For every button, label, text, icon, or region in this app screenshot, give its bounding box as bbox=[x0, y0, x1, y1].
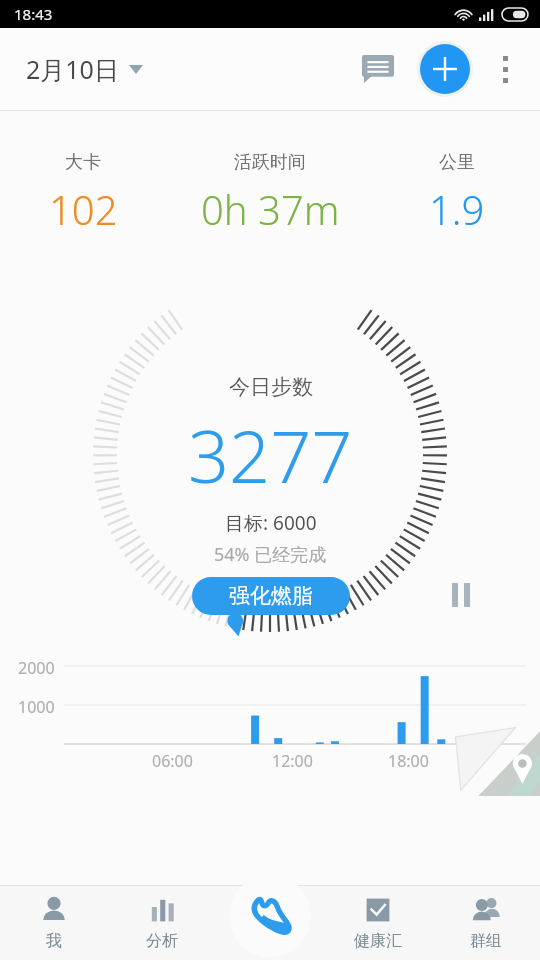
button[interactable]: 我 bbox=[0, 885, 108, 960]
staticText: 目标: 6000 bbox=[225, 510, 317, 536]
staticText: 大卡 bbox=[65, 151, 101, 174]
staticText: 18:43 bbox=[14, 4, 53, 24]
staticText: 今日步数 bbox=[229, 374, 313, 400]
staticText: 3277 bbox=[188, 406, 353, 504]
staticText: 2月10日 bbox=[26, 52, 119, 86]
button[interactable]: 分析 bbox=[108, 885, 216, 960]
button[interactable]: 群组 bbox=[432, 885, 540, 960]
button[interactable]: 大卡 bbox=[0, 149, 166, 238]
staticText: 1.9 bbox=[429, 182, 485, 236]
staticText: 06:00 bbox=[152, 750, 193, 772]
staticText: 分析 bbox=[146, 931, 178, 951]
staticText: 公里 bbox=[439, 151, 475, 174]
staticText: 12:00 bbox=[272, 750, 313, 772]
staticText: 0h 37m bbox=[201, 182, 340, 236]
button[interactable]: Add bbox=[414, 38, 476, 100]
button[interactable]: 2月10日 bbox=[22, 46, 147, 92]
button[interactable]: Map bbox=[452, 724, 540, 796]
staticText: 102 bbox=[49, 182, 118, 236]
button[interactable]: More options bbox=[478, 42, 532, 96]
staticText: 我 bbox=[46, 931, 62, 951]
button[interactable]: 公里 bbox=[374, 149, 540, 238]
staticText: 活跃时间 bbox=[234, 151, 306, 174]
button[interactable]: Steps bbox=[229, 875, 311, 957]
staticText: 1000 bbox=[18, 696, 55, 718]
staticText: 强化燃脂 bbox=[229, 583, 313, 609]
button[interactable]: Pause bbox=[444, 578, 478, 612]
staticText: 健康汇 bbox=[354, 931, 402, 951]
button[interactable]: 活跃时间 bbox=[166, 149, 374, 238]
button[interactable]: 强化燃脂 bbox=[192, 577, 350, 615]
staticText: 18:00 bbox=[388, 750, 429, 772]
staticText: 2000 bbox=[18, 657, 55, 679]
button[interactable]: 健康汇 bbox=[324, 885, 432, 960]
staticText: 群组 bbox=[470, 931, 502, 951]
staticText: 54% 已经完成 bbox=[214, 542, 327, 567]
button[interactable]: Messages bbox=[350, 41, 406, 97]
